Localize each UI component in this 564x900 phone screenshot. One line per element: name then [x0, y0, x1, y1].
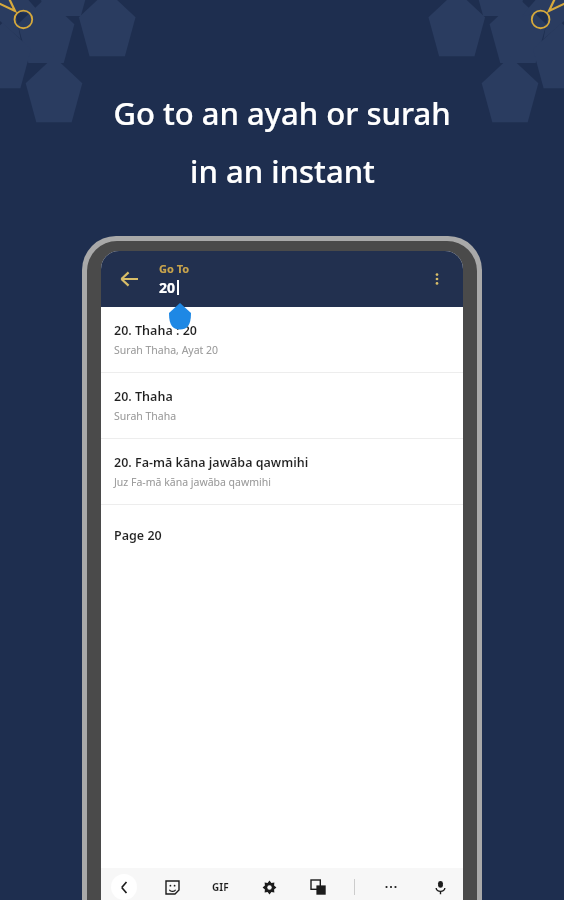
- button[interactable]: Settings: [256, 874, 282, 900]
- button[interactable]: More options: [417, 259, 457, 299]
- staticText: 20. Thaha: [114, 388, 173, 405]
- staticText: GIF: [212, 880, 229, 894]
- button[interactable]: 20. Thaha : 20: [101, 307, 463, 372]
- staticText: 20: [159, 278, 176, 297]
- button[interactable]: Back: [107, 257, 151, 301]
- button[interactable]: Collapse toolbar: [111, 874, 137, 900]
- button[interactable]: 20. Fa-mā kāna jawāba qawmihi: [101, 439, 463, 504]
- button[interactable]: Stickers: [159, 874, 185, 900]
- button[interactable]: More: [378, 874, 404, 900]
- staticText: Surah Thaha, Ayat 20: [114, 343, 219, 357]
- staticText: in an instant: [190, 150, 375, 192]
- staticText: 20. Thaha : 20: [114, 322, 197, 339]
- button[interactable]: 20. Thaha: [101, 373, 463, 438]
- staticText: Page 20: [114, 527, 162, 544]
- staticText: Juz Fa-mā kāna jawāba qawmihi: [114, 475, 271, 489]
- button[interactable]: Translate: [305, 874, 331, 900]
- button[interactable]: GIF: [208, 876, 233, 898]
- button[interactable]: Voice input: [427, 874, 453, 900]
- staticText: Surah Thaha: [114, 409, 177, 423]
- staticText: 20. Fa-mā kāna jawāba qawmihi: [114, 454, 309, 471]
- button[interactable]: Page 20: [101, 505, 463, 565]
- staticText: Go to an ayah or surah: [113, 92, 451, 134]
- staticText: Go To: [159, 261, 190, 276]
